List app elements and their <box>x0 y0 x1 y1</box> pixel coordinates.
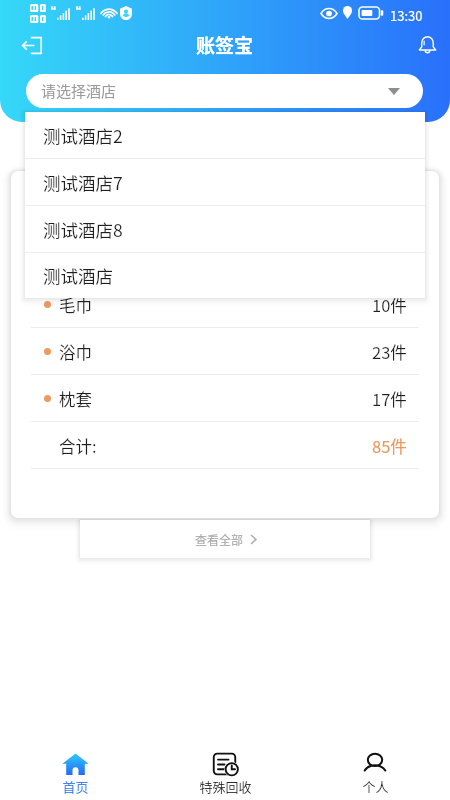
staticText: 23件 <box>372 340 407 364</box>
button[interactable]: 退出登录 <box>12 30 52 60</box>
button[interactable]: 测试酒店2 <box>25 112 425 159</box>
staticText: 毛巾 <box>59 293 92 317</box>
staticText: 测试酒店8 <box>43 217 123 242</box>
button[interactable]: 浴巾 <box>11 328 439 375</box>
button[interactable]: 首页 <box>0 745 150 800</box>
staticText: 合计: <box>59 434 97 458</box>
staticText: 枕套 <box>59 387 92 411</box>
staticText: 首页 <box>62 777 89 796</box>
button[interactable]: 特殊回收 <box>150 745 300 800</box>
staticText: 17件 <box>372 387 407 411</box>
button[interactable]: 通知 <box>407 29 447 59</box>
button[interactable]: 测试酒店8 <box>25 206 425 253</box>
staticText: 请选择酒店 <box>41 80 117 102</box>
button[interactable]: 查看全部 <box>80 520 370 558</box>
button[interactable]: 毛巾 <box>11 281 439 328</box>
staticText: 账签宝 <box>196 31 254 59</box>
button[interactable]: 测试酒店 <box>25 253 425 298</box>
staticText: 测试酒店2 <box>43 123 123 148</box>
staticText: 特殊回收 <box>199 777 252 796</box>
button[interactable]: 请选择酒店 <box>26 74 423 108</box>
staticText: 测试酒店 <box>43 263 113 288</box>
staticText: 浴巾 <box>59 340 92 364</box>
staticText: 个人 <box>362 777 389 796</box>
button[interactable]: 枕套 <box>11 375 439 422</box>
button[interactable]: 合计: <box>11 422 439 469</box>
button[interactable]: 个人 <box>300 745 450 800</box>
staticText: 10件 <box>372 293 407 317</box>
staticText: 查看全部 <box>195 531 244 548</box>
button[interactable]: 测试酒店7 <box>25 159 425 206</box>
staticText: 测试酒店7 <box>43 170 123 195</box>
staticText: 13:30 <box>390 6 423 25</box>
staticText: 85件 <box>372 434 407 458</box>
